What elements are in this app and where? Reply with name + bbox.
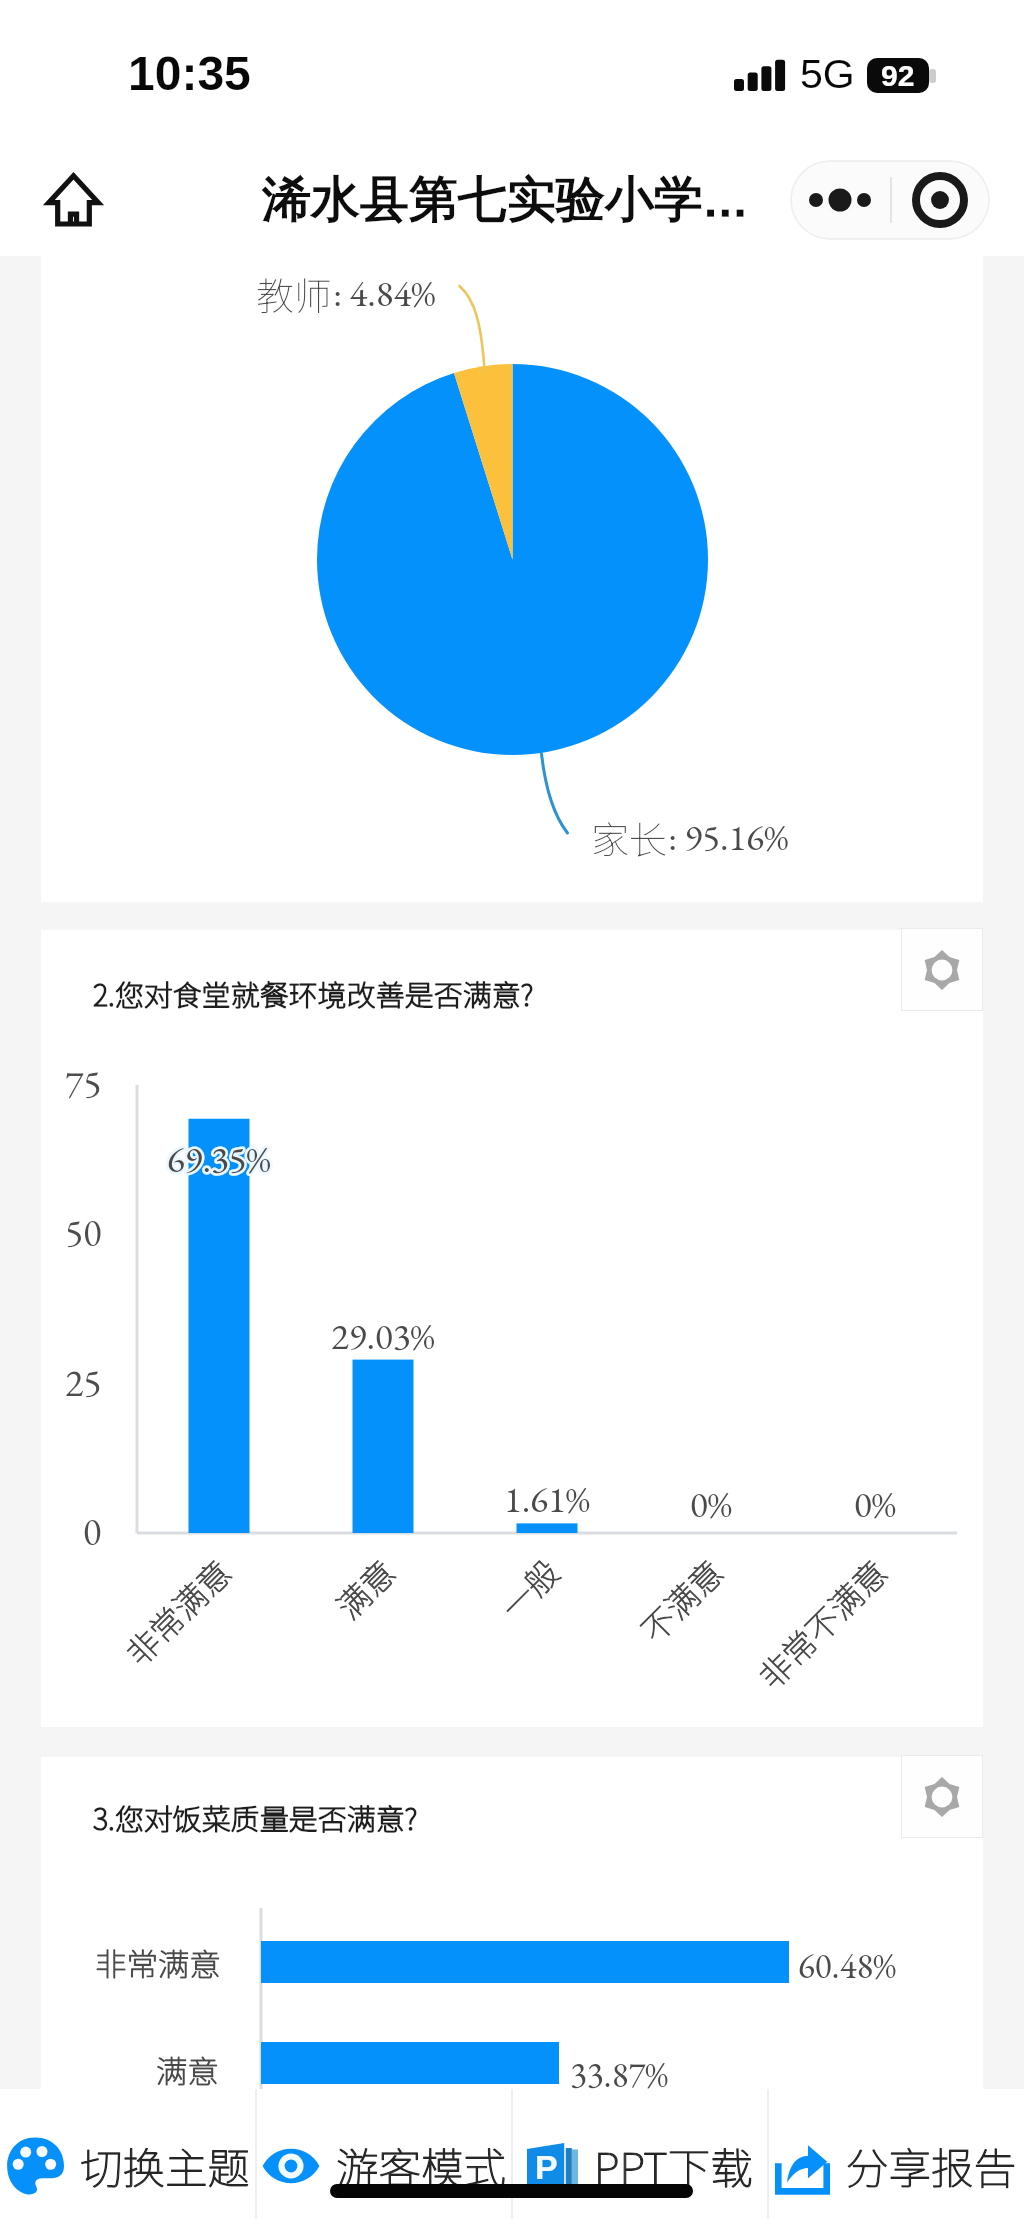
staticText: 一般 (488, 1548, 569, 1629)
staticText: P (535, 2148, 558, 2186)
staticText: 3.您对饭菜质量是否满意? (93, 1796, 418, 1838)
staticText: 分享报告 (846, 2135, 1017, 2197)
staticText: 非常满意 (95, 1939, 222, 1985)
staticText: PPT下载 (594, 2135, 753, 2197)
staticText: 非常满意 (114, 1548, 241, 1675)
staticText: 不满意 (629, 1548, 733, 1652)
staticText: 5G (800, 51, 855, 97)
staticText: 非常满意 (95, 1939, 222, 1985)
staticText: : 95.16% (668, 813, 789, 861)
staticText: 浠水县第七实验小学... (262, 169, 748, 231)
staticText: 满意 (156, 2046, 220, 2092)
staticText: PPT下载 (594, 2135, 753, 2197)
staticText: 满意 (324, 1548, 405, 1629)
staticText: 75 (65, 1059, 102, 1109)
staticText: 25 (65, 1358, 102, 1408)
staticText: 0% (690, 1480, 732, 1528)
staticText: 2.您对食堂就餐环境改善是否满意? (93, 972, 534, 1014)
staticText: 60.48% (798, 1943, 897, 1989)
staticText: 分享报告 (846, 2135, 1017, 2197)
button[interactable]: 分享报告 (768, 2101, 1024, 2219)
button[interactable]: Chart settings (901, 1755, 983, 1838)
staticText: 切换主题 (80, 2135, 251, 2197)
staticText: 69.35% (167, 1135, 271, 1183)
staticText: 1.61% (504, 1475, 590, 1523)
button[interactable]: P (512, 2101, 768, 2219)
staticText: 切换主题 (80, 2135, 251, 2197)
staticText: 非常不满意 (746, 1548, 897, 1699)
staticText: 10:35 (128, 47, 251, 101)
staticText: 69.35% (167, 1135, 271, 1183)
button[interactable]: Home (23, 149, 123, 249)
button[interactable]: More options (790, 160, 890, 240)
staticText: 游客模式 (336, 2135, 507, 2197)
staticText: 教师 (256, 266, 333, 321)
button[interactable]: 切换主题 (0, 2101, 256, 2219)
staticText: 0 (83, 1507, 102, 1557)
staticText: : 4.84% (333, 269, 436, 317)
staticText: 游客模式 (336, 2135, 507, 2197)
staticText: 33.87% (570, 2052, 669, 2098)
staticText: 92 (881, 59, 915, 93)
staticText: 0% (854, 1480, 896, 1528)
staticText: 2.您对食堂就餐环境改善是否满意? (93, 972, 534, 1014)
staticText: 不满意 (629, 1548, 733, 1652)
button[interactable]: Close mini program (890, 160, 990, 240)
staticText: 29.03% (331, 1312, 435, 1360)
staticText: 非常不满意 (746, 1548, 897, 1699)
staticText: 非常满意 (114, 1548, 241, 1675)
button[interactable]: 游客模式 (256, 2101, 512, 2219)
staticText: 3.您对饭菜质量是否满意? (93, 1796, 418, 1838)
staticText: 满意 (324, 1548, 405, 1629)
staticText: 50 (65, 1208, 102, 1258)
staticText: 满意 (156, 2046, 220, 2092)
staticText: 家长 (591, 810, 668, 865)
staticText: 一般 (488, 1548, 569, 1629)
button[interactable]: Chart settings (901, 928, 983, 1011)
